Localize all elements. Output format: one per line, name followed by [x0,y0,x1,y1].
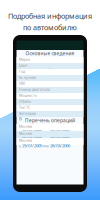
staticText: с 29/01/2005 по 28/03/2006 [19,136,70,141]
staticText: Москва [19,124,32,129]
staticText: XW8ZZZ61ZJG000000 [19,86,56,91]
staticText: Год [19,69,25,74]
staticText: с 29/01/2005 по 28/03/2006 [19,129,70,134]
staticText: 1500 см3 [19,104,35,109]
staticText: Тип ТС [19,105,30,110]
staticText: Номер двигателя [19,87,50,92]
staticText: Объём [19,99,31,104]
staticText: ЛЕГКОВОЙ [19,110,41,115]
staticText: по автомобилю [23,22,77,32]
staticText: с 29/01/2005 по 28/03/2006 [19,143,70,148]
staticText: B [19,116,22,121]
staticText: 109 л.с. [19,98,33,103]
staticText: Москва [19,138,32,143]
staticText: Мощность [19,93,37,98]
staticText: VIN [19,81,25,86]
staticText: 2008 [19,74,27,79]
staticText: 1NZ-1234567 [19,92,41,97]
staticText: Категория [19,111,36,116]
staticText: № кузова [19,75,36,80]
staticText: СЕРЕБРИСТЫЙ [19,68,50,73]
staticText: Марка [19,57,30,62]
staticText: Москва [19,131,32,136]
staticText: Перечень операций [25,117,75,124]
staticText: Основные сведения [25,50,74,57]
staticText: TOYOTA [19,62,34,67]
staticText: NZE1410009361 [19,80,46,85]
staticText: Подробная информация [8,11,92,21]
staticText: Цвет [19,63,28,68]
